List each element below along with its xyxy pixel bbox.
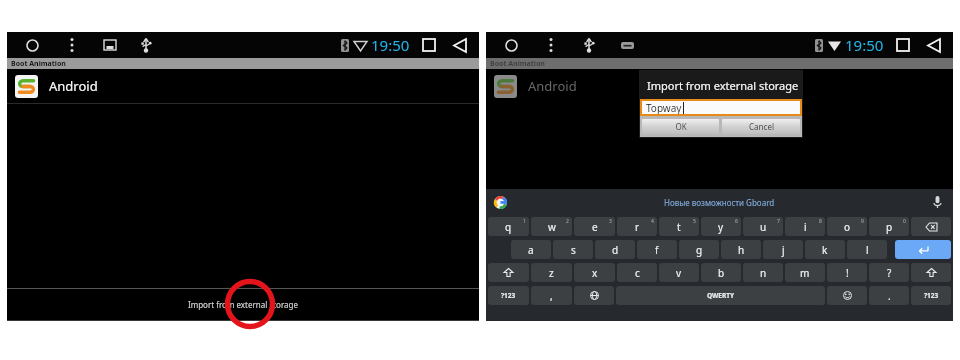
staticText: 6 — [735, 218, 738, 225]
staticText: e — [592, 220, 598, 234]
button[interactable]: n — [743, 263, 783, 282]
staticText: , — [550, 289, 553, 303]
staticText: 7 — [777, 218, 780, 225]
button[interactable]: Screenshot — [99, 34, 121, 56]
button[interactable]: Home — [500, 34, 522, 56]
button[interactable]: Language — [574, 286, 614, 305]
button[interactable]: s — [553, 240, 593, 259]
button[interactable]: h — [721, 240, 761, 259]
button[interactable]: Cancel — [722, 119, 800, 134]
button[interactable]: Emoji — [827, 286, 867, 305]
button[interactable]: Shift — [488, 263, 529, 282]
staticText: k — [822, 243, 828, 257]
button[interactable]: Menu — [61, 34, 83, 56]
staticText: c — [635, 266, 640, 280]
button[interactable]: p — [869, 217, 909, 236]
staticText: f — [655, 243, 659, 257]
button[interactable]: e — [574, 217, 615, 236]
staticText: g — [696, 243, 703, 257]
staticText: m — [800, 266, 810, 280]
button[interactable]: USB — [578, 34, 600, 56]
staticText: d — [612, 243, 619, 257]
staticText: ! — [846, 266, 849, 280]
staticText: i — [804, 220, 807, 234]
button[interactable]: Keyboard — [616, 34, 638, 56]
button[interactable]: w — [531, 217, 572, 236]
button[interactable]: ! — [827, 263, 867, 282]
button[interactable]: Back — [450, 35, 470, 55]
button[interactable]: v — [659, 263, 699, 282]
staticText: 8 — [819, 218, 822, 225]
button[interactable]: USB — [135, 34, 157, 56]
button[interactable]: g — [679, 240, 719, 259]
staticText: ?123 — [501, 291, 516, 300]
staticText: y — [718, 220, 724, 234]
button[interactable]: x — [574, 263, 615, 282]
staticText: . — [888, 289, 891, 303]
button[interactable]: y — [701, 217, 741, 236]
button[interactable]: Recents — [419, 35, 439, 55]
button[interactable]: Home — [21, 34, 43, 56]
button[interactable]: t — [659, 217, 699, 236]
button[interactable]: o — [827, 217, 867, 236]
staticText: t — [677, 220, 681, 234]
button[interactable]: ?123 — [488, 286, 529, 305]
staticText: h — [738, 243, 745, 257]
staticText: Topway — [646, 101, 682, 114]
staticText: 19:50 — [845, 35, 884, 55]
button[interactable]: , — [531, 286, 572, 305]
staticText: o — [844, 220, 851, 234]
staticText: b — [718, 266, 725, 280]
button[interactable]: Shift — [911, 263, 951, 282]
staticText: 3 — [609, 218, 612, 225]
button[interactable]: Topway — [642, 101, 800, 114]
staticText: j — [782, 243, 785, 257]
staticText: 1 — [523, 218, 526, 225]
button[interactable]: j — [763, 240, 803, 259]
staticText: u — [760, 220, 767, 234]
button[interactable]: Android — [486, 69, 953, 103]
staticText: ? — [887, 266, 892, 280]
button[interactable]: OK — [642, 119, 719, 134]
button[interactable]: Voice input — [929, 194, 945, 210]
button[interactable]: z — [531, 263, 572, 282]
staticText: OK — [675, 121, 687, 132]
button[interactable]: . — [869, 286, 909, 305]
button[interactable]: r — [617, 217, 657, 236]
button[interactable]: d — [595, 240, 635, 259]
button[interactable]: a — [511, 240, 551, 259]
button[interactable]: Google — [493, 195, 508, 210]
button[interactable]: u — [743, 217, 783, 236]
button[interactable]: m — [785, 263, 825, 282]
staticText: Android — [528, 77, 577, 95]
button[interactable]: Backspace — [911, 217, 951, 236]
staticText: 0 — [903, 218, 906, 225]
staticText: QWERTY — [707, 291, 735, 300]
button[interactable]: Enter — [895, 240, 951, 259]
button[interactable]: f — [637, 240, 677, 259]
button[interactable]: q — [488, 217, 529, 236]
button[interactable]: Import from external storage — [7, 289, 479, 320]
button[interactable]: Menu — [540, 34, 562, 56]
button[interactable]: Recents — [893, 35, 913, 55]
staticText: p — [886, 220, 893, 234]
button[interactable]: i — [785, 217, 825, 236]
button[interactable]: ? — [869, 263, 909, 282]
staticText: 5 — [693, 218, 696, 225]
button[interactable]: b — [701, 263, 741, 282]
staticText: ?123 — [924, 291, 939, 300]
button[interactable]: l — [847, 240, 887, 259]
staticText: Boot Animation — [490, 59, 545, 69]
staticText: s — [571, 243, 576, 257]
staticText: Boot Animation — [11, 59, 66, 69]
button[interactable]: k — [805, 240, 845, 259]
staticText: w — [548, 220, 556, 234]
button[interactable]: ?123 — [911, 286, 951, 305]
button[interactable]: Back — [924, 35, 944, 55]
staticText: r — [635, 220, 640, 234]
button[interactable]: QWERTY — [616, 286, 825, 305]
button[interactable]: c — [617, 263, 657, 282]
staticText: 2 — [566, 218, 569, 225]
button[interactable]: Android — [7, 69, 479, 103]
staticText: Cancel — [749, 121, 774, 132]
